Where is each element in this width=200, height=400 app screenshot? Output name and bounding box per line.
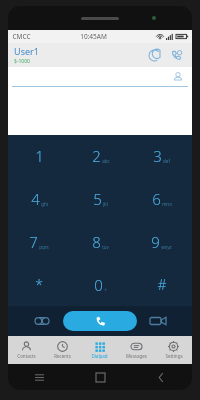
staticText: 2 xyxy=(92,146,101,166)
staticText: jkl xyxy=(103,201,108,207)
button[interactable]: 9 xyxy=(131,220,192,263)
staticText: + xyxy=(104,287,107,293)
button[interactable]: Menu xyxy=(8,364,70,390)
staticText: 4 xyxy=(31,189,40,209)
button[interactable]: 7 xyxy=(8,220,70,263)
staticText: 10:45AM xyxy=(80,32,107,41)
button[interactable]: Video call xyxy=(141,308,175,334)
staticText: 9 xyxy=(151,232,160,252)
button[interactable]: Contacts xyxy=(8,336,44,364)
button[interactable]: 1 xyxy=(8,135,70,177)
staticText: 7 xyxy=(29,232,38,252)
button[interactable]: Back xyxy=(131,364,192,390)
staticText: abc xyxy=(102,158,110,164)
staticText: 0 xyxy=(94,275,103,295)
staticText: User1 xyxy=(14,45,39,57)
button[interactable]: # xyxy=(131,263,192,306)
staticText: $-1000 xyxy=(14,58,30,65)
button[interactable]: 3 xyxy=(131,135,192,177)
button[interactable]: 2 xyxy=(70,135,131,177)
staticText: * xyxy=(35,275,43,294)
button[interactable]: 8 xyxy=(70,220,131,263)
staticText: tuv xyxy=(102,244,109,250)
button[interactable]: Home xyxy=(70,364,131,390)
staticText: ghi xyxy=(41,201,48,207)
button[interactable]: Settings xyxy=(155,336,192,364)
button[interactable]: Voicemail xyxy=(25,308,59,334)
staticText: Recents xyxy=(54,353,71,359)
button[interactable]: Recents xyxy=(44,336,81,364)
button[interactable]: 6 xyxy=(131,177,192,220)
staticText: 5 xyxy=(93,189,102,209)
staticText: 8 xyxy=(92,232,101,252)
staticText: Settings xyxy=(165,353,183,359)
button[interactable]: User1 xyxy=(14,45,39,65)
button[interactable]: Dialpad xyxy=(81,336,118,364)
staticText: Dialpad xyxy=(91,353,108,359)
button[interactable]: * xyxy=(8,263,70,306)
staticText: 1 xyxy=(35,146,44,166)
button[interactable]: 4 xyxy=(8,177,70,220)
button[interactable]: Do not disturb xyxy=(144,45,164,65)
button[interactable]: Call xyxy=(63,311,137,331)
staticText: 3 xyxy=(153,146,162,166)
staticText: def xyxy=(163,158,170,164)
staticText: wxyz xyxy=(161,244,172,250)
button[interactable]: 5 xyxy=(70,177,131,220)
button[interactable]: Add contact xyxy=(170,69,186,85)
staticText: Messages xyxy=(126,353,147,359)
staticText: pqrs xyxy=(39,244,49,250)
button[interactable]: 0 xyxy=(70,263,131,306)
button[interactable]: Call settings xyxy=(166,45,186,65)
staticText: mno xyxy=(162,201,172,207)
staticText: Contacts xyxy=(17,353,36,359)
button[interactable]: Messages xyxy=(118,336,155,364)
staticText: # xyxy=(157,275,167,294)
staticText: 6 xyxy=(152,189,161,209)
staticText: CMCC xyxy=(12,32,31,41)
